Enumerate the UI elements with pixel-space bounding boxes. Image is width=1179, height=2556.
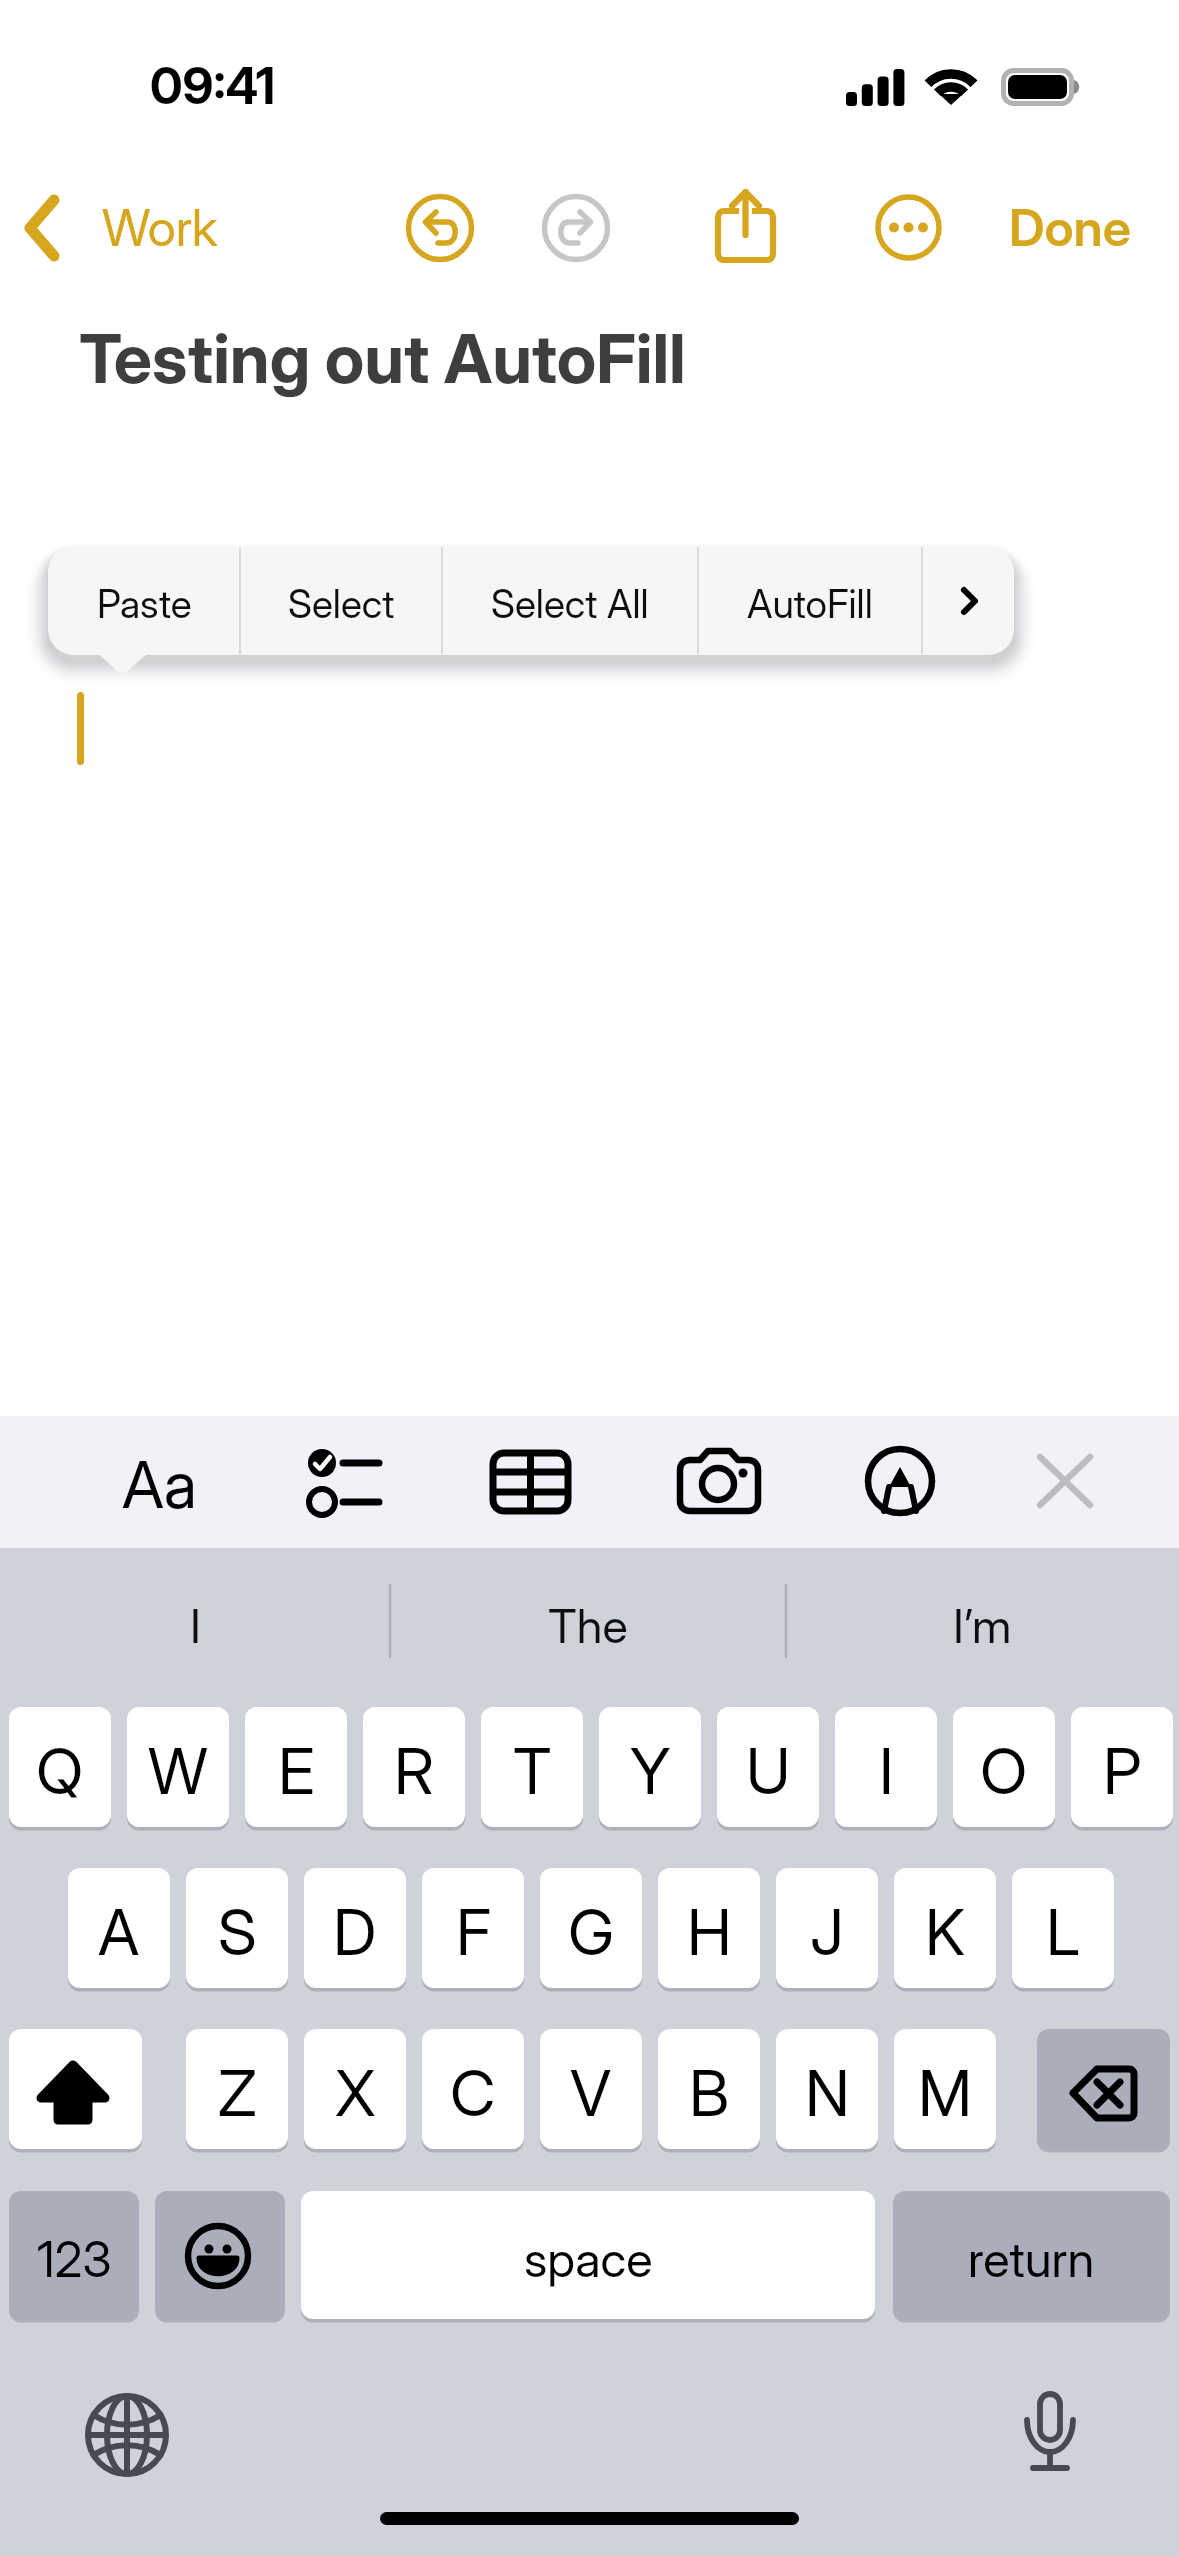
staticText: Select [288,580,395,627]
staticText: K [925,1894,965,1970]
button[interactable]: F [422,1868,524,1988]
button[interactable]: Format [99,1418,219,1550]
staticText: Testing out AutoFill [79,317,686,399]
staticText: P [1103,1733,1142,1809]
button[interactable]: D [304,1868,406,1988]
button[interactable]: More [872,192,944,264]
button[interactable]: G [540,1868,642,1988]
staticText: I [190,1597,201,1654]
button[interactable]: The [390,1548,786,1696]
staticText: O [980,1733,1028,1809]
button[interactable]: H [658,1868,760,1988]
staticText: V [570,2055,612,2131]
button[interactable]: P [1071,1707,1173,1827]
button[interactable]: C [422,2029,524,2149]
staticText: 09:41 [150,56,276,116]
button[interactable]: Q [9,1707,111,1827]
button[interactable]: More options [922,546,1014,656]
staticText: Select All [491,580,649,627]
staticText: G [568,1894,615,1970]
button[interactable]: J [776,1868,878,1988]
button[interactable]: Camera [658,1416,778,1548]
button[interactable]: V [540,2029,642,2149]
button[interactable]: Close [1010,1416,1130,1548]
staticText: R [394,1733,434,1809]
button[interactable]: Switch keyboard [72,2380,182,2490]
button[interactable]: M [894,2029,996,2149]
button[interactable]: Select All [442,546,698,656]
button[interactable]: return [893,2191,1170,2319]
staticText: D [333,1894,377,1970]
staticText: AutoFill [747,580,873,627]
staticText: Paste [97,580,192,627]
button[interactable]: S [186,1868,288,1988]
staticText: B [689,2055,730,2131]
staticText: Q [36,1733,84,1809]
button[interactable]: Z [186,2029,288,2149]
button[interactable]: Share [700,180,790,280]
button[interactable]: N [776,2029,878,2149]
button[interactable]: Emoji [155,2191,285,2319]
staticText: I’m [953,1597,1012,1654]
button[interactable]: O [953,1707,1055,1827]
button[interactable]: Checklist [285,1416,405,1548]
staticText: E [278,1733,315,1809]
staticText: return [968,2230,1095,2289]
staticText: space [524,2230,653,2289]
button[interactable]: I [835,1707,937,1827]
button[interactable]: Shift [9,2029,142,2149]
staticText: Work [102,197,218,259]
button[interactable]: I [0,1548,390,1696]
button[interactable]: Select [240,546,442,656]
button[interactable]: Work [18,186,218,270]
button[interactable]: Table [470,1416,590,1548]
staticText: U [746,1733,791,1809]
staticText: M [918,2055,973,2131]
staticText: H [687,1894,732,1970]
staticText: W [148,1733,208,1809]
button[interactable]: X [304,2029,406,2149]
button[interactable]: A [68,1868,170,1988]
staticText: T [513,1733,552,1809]
staticText: N [805,2055,850,2131]
button[interactable]: R [363,1707,465,1827]
button[interactable]: Done [996,186,1144,270]
staticText: C [450,2055,496,2131]
button[interactable]: Markup [840,1416,960,1548]
button[interactable]: E [245,1707,347,1827]
staticText: Z [218,2055,257,2131]
staticText: The [548,1597,628,1654]
staticText: A [98,1894,140,1970]
button[interactable]: 123 [9,2191,139,2319]
staticText: S [218,1894,257,1970]
button[interactable]: B [658,2029,760,2149]
button[interactable]: W [127,1707,229,1827]
button[interactable]: Redo [540,192,612,264]
staticText: Done [1009,197,1132,259]
button[interactable]: Paste [48,546,240,656]
staticText: 123 [37,2230,112,2289]
staticText: I [879,1733,894,1809]
staticText: Aa [122,1446,197,1523]
staticText: Y [630,1733,671,1809]
button[interactable]: I’m [786,1548,1179,1696]
staticText: F [456,1894,491,1970]
button[interactable]: K [894,1868,996,1988]
button[interactable]: Dictate [995,2380,1105,2490]
staticText: J [810,1894,844,1970]
button[interactable]: Y [599,1707,701,1827]
button[interactable]: AutoFill [698,546,922,656]
button[interactable]: Undo [404,192,476,264]
button[interactable]: T [481,1707,583,1827]
button[interactable]: Backspace [1037,2029,1170,2149]
button[interactable]: space [301,2191,875,2319]
button[interactable]: U [717,1707,819,1827]
staticText: X [335,2055,376,2131]
staticText: L [1046,1894,1080,1970]
button[interactable]: L [1012,1868,1114,1988]
